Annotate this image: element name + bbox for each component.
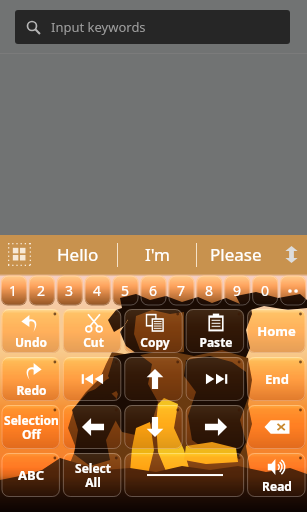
staticText: 8 <box>205 281 214 300</box>
button[interactable]: Backspace <box>246 403 307 451</box>
button[interactable]: Redo <box>0 355 62 403</box>
staticText: Selection Off <box>4 412 59 443</box>
staticText: Home <box>257 322 296 340</box>
button[interactable]: Paste <box>185 307 246 355</box>
staticText: End <box>265 370 289 388</box>
button[interactable]: Move right <box>185 403 246 451</box>
button[interactable]: Keyboard layouts <box>0 235 38 274</box>
button[interactable]: Move down <box>124 403 185 451</box>
button[interactable]: 7 <box>167 274 195 307</box>
staticText: Select All <box>75 460 111 491</box>
staticText: Redo <box>16 382 47 398</box>
button[interactable]: 4 <box>83 274 111 307</box>
staticText: 3 <box>65 281 74 300</box>
button[interactable]: More symbols <box>279 274 307 307</box>
button[interactable]: 1 <box>0 274 27 307</box>
staticText: 0 <box>261 281 270 300</box>
button[interactable]: I'm <box>118 235 196 274</box>
button[interactable]: Input keywords <box>15 10 290 44</box>
staticText: Undo <box>15 334 47 350</box>
staticText: Paste <box>199 334 233 350</box>
button[interactable]: Previous word <box>62 355 124 403</box>
staticText: Copy <box>140 334 170 350</box>
button[interactable]: 9 <box>223 274 251 307</box>
staticText: 5 <box>121 281 130 300</box>
button[interactable]: Undo <box>0 307 62 355</box>
staticText: 4 <box>93 281 102 300</box>
staticText: ABC <box>18 466 44 484</box>
button[interactable]: ABC <box>0 451 62 499</box>
staticText: Read <box>262 478 292 494</box>
button[interactable]: Copy <box>124 307 185 355</box>
staticText: Please <box>210 243 262 266</box>
button[interactable]: Move left <box>62 403 124 451</box>
button[interactable]: Expand candidates <box>275 235 307 274</box>
button[interactable]: Space <box>123 451 246 499</box>
button[interactable]: Home <box>246 307 307 355</box>
button[interactable]: Please <box>197 235 275 274</box>
staticText: 2 <box>37 281 46 300</box>
button[interactable]: 6 <box>139 274 167 307</box>
button[interactable]: Next word <box>185 355 246 403</box>
button[interactable]: End <box>246 355 307 403</box>
button[interactable]: Move up <box>124 355 185 403</box>
staticText: 9 <box>233 281 242 300</box>
button[interactable]: 8 <box>195 274 223 307</box>
staticText: 7 <box>177 281 186 300</box>
staticText: Cut <box>83 334 104 350</box>
staticText: 1 <box>9 281 18 300</box>
button[interactable]: Hello <box>38 235 117 274</box>
staticText: I'm <box>145 243 170 266</box>
button[interactable]: Read <box>246 451 307 499</box>
button[interactable]: Cut <box>62 307 124 355</box>
staticText: 6 <box>149 281 158 300</box>
button[interactable]: 5 <box>111 274 139 307</box>
button[interactable]: 3 <box>55 274 83 307</box>
staticText: Hello <box>57 243 99 266</box>
button[interactable]: Select All <box>62 451 123 499</box>
staticText: Input keywords <box>51 18 146 36</box>
button[interactable]: 2 <box>27 274 55 307</box>
button[interactable]: Selection Off <box>0 403 62 451</box>
button[interactable]: 0 <box>251 274 279 307</box>
